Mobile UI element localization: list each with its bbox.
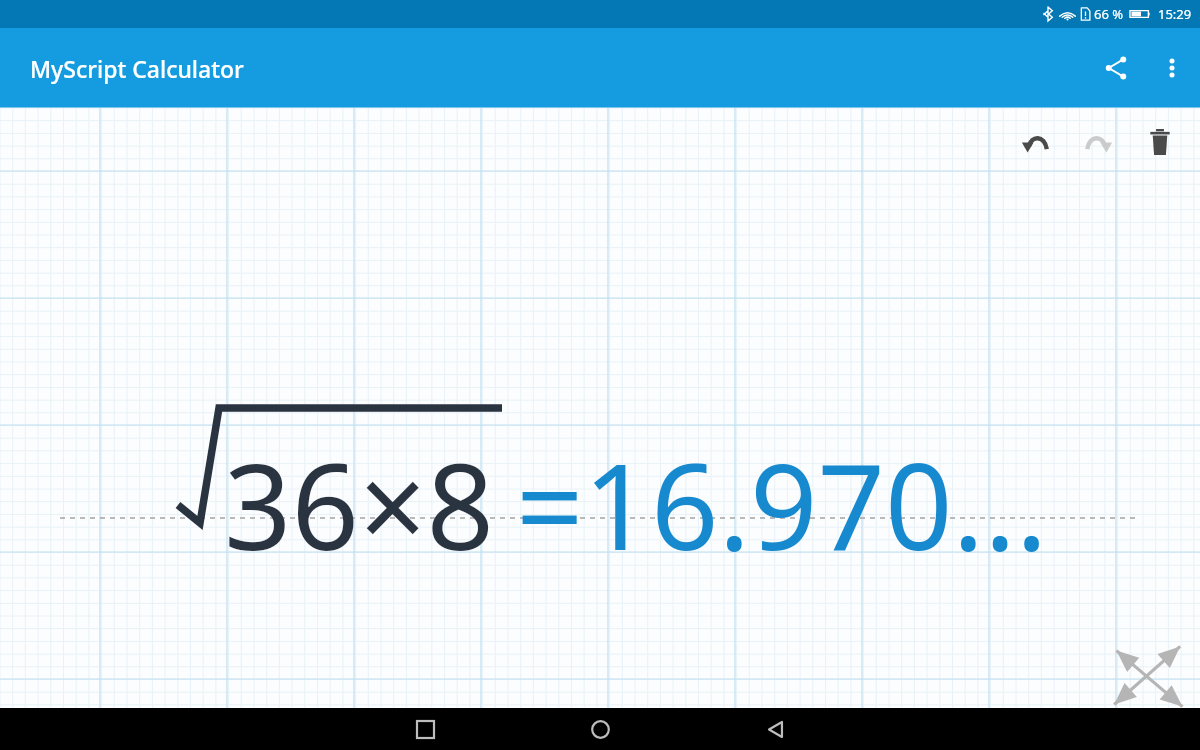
button[interactable]: Redo — [1070, 114, 1126, 170]
button[interactable]: Home — [578, 708, 622, 750]
staticText: MyScript Calculator — [30, 53, 244, 84]
button[interactable]: Share — [1088, 40, 1144, 96]
button[interactable]: Recents — [403, 708, 447, 750]
button[interactable]: Delete — [1132, 114, 1188, 170]
button[interactable]: Undo — [1008, 114, 1064, 170]
button[interactable]: Resize — [1090, 638, 1200, 708]
staticText: =16.970... — [516, 424, 1048, 585]
staticText: 15:29 — [1158, 5, 1192, 23]
button[interactable]: More options — [1144, 40, 1200, 96]
staticText: 66 % — [1094, 5, 1124, 23]
staticText: 36×8 — [224, 424, 494, 585]
button[interactable]: Back — [753, 708, 797, 750]
